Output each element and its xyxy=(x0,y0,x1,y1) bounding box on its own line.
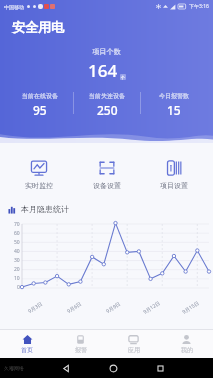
staticText: 9月6日 xyxy=(66,300,83,315)
staticText: 项目个数 xyxy=(0,47,213,56)
staticText: 50 xyxy=(14,239,20,246)
staticText: 60 xyxy=(14,230,20,237)
staticText: 30 xyxy=(14,257,20,264)
staticText: 164 xyxy=(88,59,118,82)
button[interactable]: 当前失连设备 xyxy=(74,92,140,118)
staticText: 应用 xyxy=(128,346,140,354)
button[interactable]: Recents xyxy=(156,364,165,373)
button[interactable]: 当前在线设备 xyxy=(6,92,73,118)
staticText: 实时监控 xyxy=(25,181,53,190)
other: 项目设置 xyxy=(165,159,183,177)
button[interactable]: 我的 xyxy=(160,330,213,358)
staticText: 15 xyxy=(167,102,181,118)
button[interactable]: 应用 xyxy=(107,330,160,358)
staticText: 安全用电 xyxy=(12,19,64,35)
staticText: 当前失连设备 xyxy=(89,92,125,100)
button[interactable]: Back xyxy=(62,364,71,373)
button[interactable]: 今日报警数 xyxy=(141,92,207,118)
other: 设备设置 xyxy=(98,159,116,177)
button[interactable]: 设备设置 xyxy=(78,157,136,192)
other: 实时监控 xyxy=(30,159,48,177)
button[interactable]: 实时监控 xyxy=(10,157,68,192)
staticText: 本月隐患统计 xyxy=(21,204,69,214)
staticText: 70 xyxy=(14,221,20,228)
staticText: 9月15日 xyxy=(181,300,201,316)
staticText: 久嘟网络 xyxy=(4,365,24,371)
staticText: 下午3:16 xyxy=(189,3,209,10)
button[interactable]: Home xyxy=(109,364,118,373)
staticText: 首页 xyxy=(21,346,33,354)
button[interactable]: 项目设置 xyxy=(145,157,203,192)
staticText: 中国移动 xyxy=(4,4,24,10)
staticText: 今日报警数 xyxy=(159,92,189,100)
staticText: 9月3日 xyxy=(27,300,44,315)
staticText: 9月12日 xyxy=(142,300,162,316)
button[interactable]: 首页 xyxy=(0,330,54,358)
staticText: 报警 xyxy=(75,346,87,354)
staticText: 我的 xyxy=(181,346,193,354)
staticText: 40 xyxy=(14,248,20,255)
staticText: 9月9日 xyxy=(105,300,122,315)
staticText: 250 xyxy=(97,102,118,118)
staticText: 个 xyxy=(121,75,125,80)
staticText: 项目设置 xyxy=(160,181,188,190)
staticText: 20 xyxy=(14,266,20,273)
staticText: 设备设置 xyxy=(93,181,121,190)
staticText: 0 xyxy=(17,284,20,291)
staticText: 95 xyxy=(33,102,47,118)
staticText: 10 xyxy=(14,275,20,282)
staticText: 当前在线设备 xyxy=(22,92,58,100)
button[interactable]: 报警 xyxy=(54,330,107,358)
